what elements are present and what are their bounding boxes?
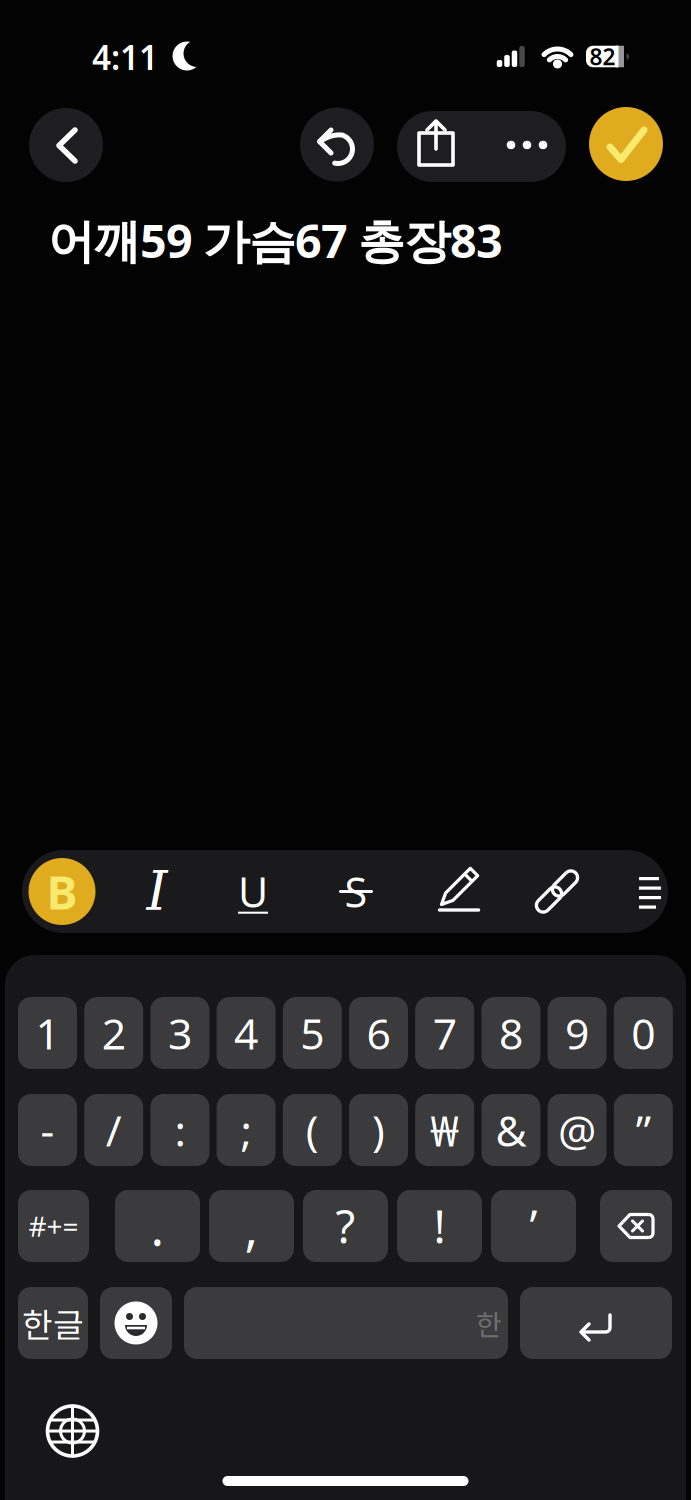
staticText: 어깨59 가슴67 총장83 bbox=[48, 208, 503, 272]
button[interactable]: ( bbox=[283, 1094, 342, 1166]
button[interactable]: #+= bbox=[18, 1190, 89, 1262]
button[interactable]: - bbox=[18, 1094, 77, 1166]
staticText: U bbox=[238, 864, 268, 919]
staticText: 5 bbox=[300, 1005, 324, 1061]
button[interactable]: Underline bbox=[218, 856, 288, 926]
button[interactable]: @ bbox=[548, 1094, 607, 1166]
staticText: ’ bbox=[529, 1196, 537, 1256]
button[interactable]: 7 bbox=[415, 997, 474, 1069]
staticText: . bbox=[150, 1192, 164, 1260]
button[interactable]: ” bbox=[614, 1094, 673, 1166]
button[interactable]: Highlight bbox=[424, 856, 494, 926]
button[interactable]: More bbox=[487, 111, 567, 182]
staticText: 82 bbox=[589, 41, 615, 71]
staticText: 9 bbox=[565, 1005, 589, 1061]
button[interactable]: Emoji bbox=[100, 1287, 172, 1359]
button[interactable]: ; bbox=[217, 1094, 276, 1166]
staticText: ) bbox=[372, 1102, 385, 1158]
button[interactable]: ’ bbox=[491, 1190, 576, 1262]
staticText: , bbox=[244, 1192, 258, 1260]
staticText: ! bbox=[433, 1196, 445, 1256]
staticText: & bbox=[495, 1102, 526, 1158]
staticText: : bbox=[174, 1102, 185, 1158]
button[interactable]: Delete bbox=[600, 1190, 672, 1262]
staticText: 1 bbox=[35, 1005, 59, 1061]
staticText: I bbox=[146, 860, 167, 923]
staticText: 6 bbox=[366, 1005, 390, 1061]
staticText: S bbox=[344, 864, 367, 919]
staticText: 2 bbox=[102, 1005, 126, 1061]
button[interactable]: 1 bbox=[18, 997, 77, 1069]
button[interactable]: Share bbox=[397, 111, 475, 182]
button[interactable]: Paragraph style bbox=[615, 856, 685, 926]
staticText: 7 bbox=[433, 1005, 457, 1061]
staticText: ” bbox=[636, 1102, 651, 1158]
button[interactable]: / bbox=[84, 1094, 143, 1166]
button[interactable]: & bbox=[481, 1094, 540, 1166]
button[interactable]: 4 bbox=[217, 997, 276, 1069]
staticText: @ bbox=[558, 1102, 596, 1158]
button[interactable]: 9 bbox=[548, 997, 607, 1069]
staticText: 4:11 bbox=[92, 35, 158, 79]
button[interactable]: 5 bbox=[283, 997, 342, 1069]
button[interactable]: Link bbox=[522, 856, 592, 926]
staticText: ( bbox=[306, 1102, 319, 1158]
button[interactable]: Space bbox=[184, 1287, 508, 1359]
button[interactable]: Bold bbox=[28, 858, 95, 925]
button[interactable]: 8 bbox=[481, 997, 540, 1069]
staticText: ; bbox=[241, 1102, 252, 1158]
staticText: 3 bbox=[168, 1005, 192, 1061]
button[interactable]: Done bbox=[589, 107, 663, 181]
button[interactable]: , bbox=[209, 1190, 294, 1262]
staticText: - bbox=[40, 1102, 54, 1158]
staticText: ? bbox=[335, 1196, 355, 1256]
button[interactable]: 0 bbox=[614, 997, 673, 1069]
button[interactable]: ₩ bbox=[415, 1094, 474, 1166]
staticText: #+= bbox=[28, 1207, 78, 1245]
button[interactable]: : bbox=[150, 1094, 209, 1166]
button[interactable]: . bbox=[115, 1190, 200, 1262]
button[interactable]: 한글 bbox=[18, 1287, 88, 1359]
staticText: ₩ bbox=[430, 1102, 459, 1158]
button[interactable]: Back bbox=[29, 108, 103, 182]
staticText: 0 bbox=[631, 1005, 655, 1061]
staticText: / bbox=[106, 1102, 122, 1158]
button[interactable]: Strikethrough bbox=[321, 856, 391, 926]
button[interactable]: 2 bbox=[84, 997, 143, 1069]
button[interactable]: Return bbox=[520, 1287, 672, 1359]
button[interactable]: Undo bbox=[300, 107, 374, 181]
staticText: 한 bbox=[476, 1303, 502, 1343]
button[interactable]: ? bbox=[303, 1190, 388, 1262]
button[interactable]: Italic bbox=[122, 856, 192, 926]
button[interactable]: 6 bbox=[349, 997, 408, 1069]
staticText: 4 bbox=[234, 1005, 258, 1061]
staticText: 8 bbox=[499, 1005, 523, 1061]
staticText: B bbox=[46, 860, 77, 922]
staticText: 한글 bbox=[22, 1299, 84, 1347]
button[interactable]: 3 bbox=[150, 997, 209, 1069]
button[interactable]: Next keyboard bbox=[42, 1401, 102, 1461]
button[interactable]: ) bbox=[349, 1094, 408, 1166]
button[interactable]: ! bbox=[397, 1190, 482, 1262]
